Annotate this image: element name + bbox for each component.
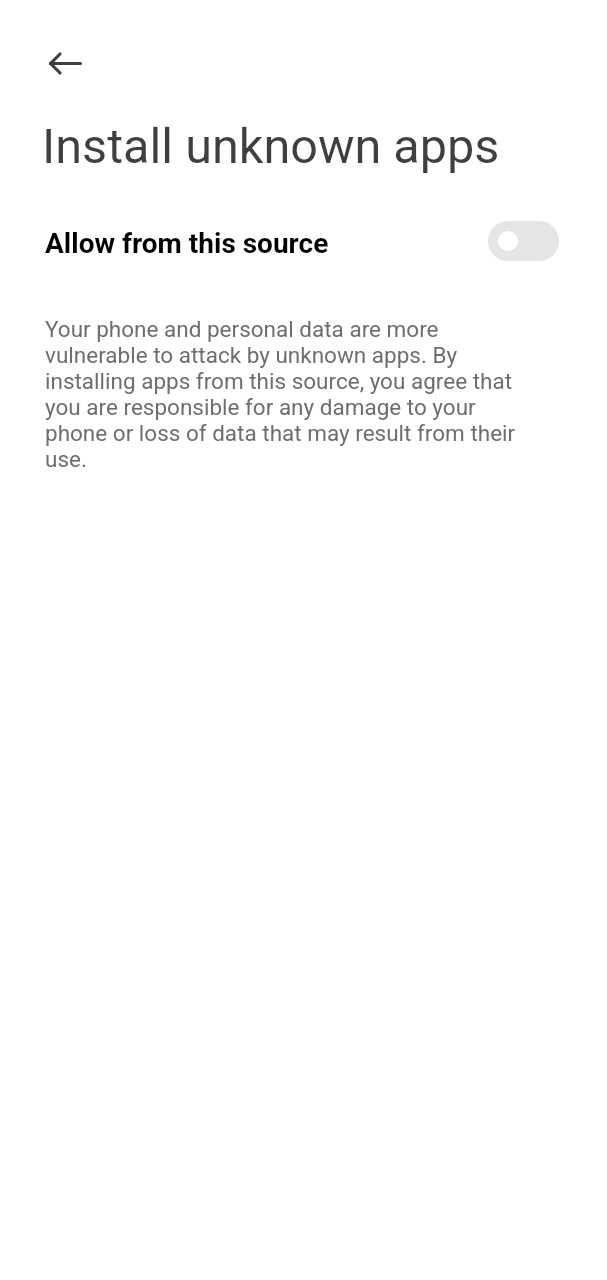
staticText: Your phone and personal data are more vu… [45, 316, 519, 472]
button[interactable]: Navigate up [41, 39, 89, 87]
staticText: Allow from this source [45, 227, 488, 260]
button[interactable]: Allow from this source, off [488, 221, 559, 261]
button[interactable]: Allow from this source [0, 210, 607, 272]
staticText: Install unknown apps [42, 118, 500, 175]
